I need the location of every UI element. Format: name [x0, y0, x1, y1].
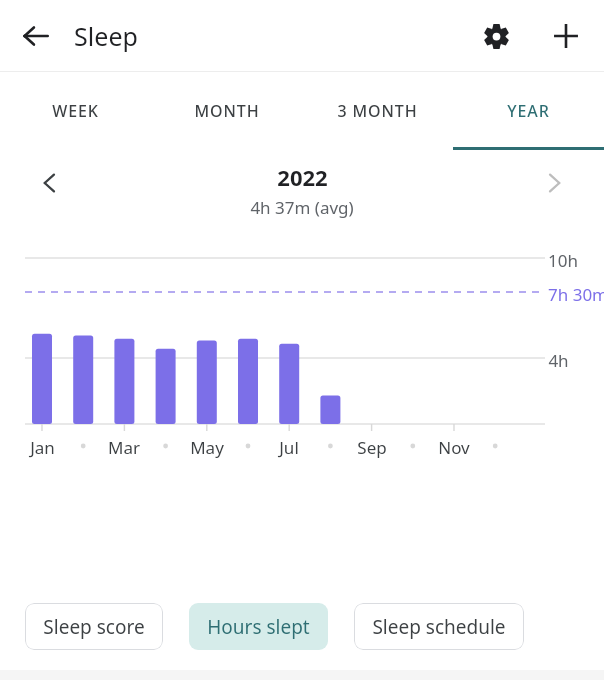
staticText: 4h	[548, 349, 569, 372]
staticText: Sleep score	[43, 614, 145, 640]
staticText: 4h 37m (avg)	[250, 196, 354, 219]
button[interactable]: Add	[542, 12, 590, 60]
button[interactable]: Sleep schedule	[354, 603, 524, 650]
staticText: Nov	[438, 436, 470, 459]
staticText: YEAR	[507, 100, 550, 122]
button[interactable]: YEAR	[453, 72, 604, 150]
button[interactable]: WEEK	[0, 72, 151, 150]
staticText: MONTH	[194, 100, 260, 122]
button[interactable]: Next year	[530, 159, 578, 207]
staticText: Sleep	[74, 19, 138, 53]
button[interactable]: Sleep score	[25, 603, 163, 650]
staticText: Mar	[108, 436, 140, 459]
button[interactable]: Settings	[472, 12, 520, 60]
staticText: Sleep schedule	[372, 614, 506, 640]
staticText: 10h	[548, 249, 578, 272]
button[interactable]: Hours slept	[189, 603, 328, 650]
staticText: 7h 30m	[548, 283, 604, 306]
staticText: Hours slept	[207, 614, 310, 640]
button[interactable]: MONTH	[151, 72, 302, 150]
staticText: 3 MONTH	[337, 100, 418, 122]
staticText: Sep	[357, 436, 387, 459]
button[interactable]: Previous year	[26, 159, 74, 207]
staticText: May	[190, 436, 224, 459]
staticText: WEEK	[52, 100, 99, 122]
staticText: Jul	[279, 436, 299, 459]
button[interactable]: Back	[12, 12, 60, 60]
staticText: Jan	[30, 436, 55, 459]
button[interactable]: 3 MONTH	[302, 72, 453, 150]
staticText: 2022	[277, 162, 328, 192]
